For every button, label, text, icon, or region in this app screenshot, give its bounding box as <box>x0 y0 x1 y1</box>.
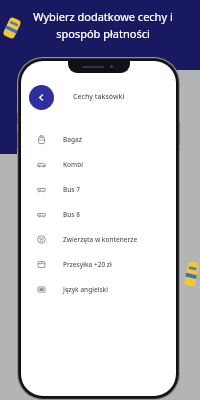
staticText: Bus 8 <box>63 210 80 219</box>
staticText: Zwierzęta w kontenerze <box>63 235 138 244</box>
staticText: Bus 7 <box>63 185 80 194</box>
button[interactable]: Przesyłka +20 zł <box>21 252 176 277</box>
staticText: spospób płatności <box>56 26 150 41</box>
button[interactable]: Bus 8 <box>21 202 176 227</box>
staticText: Bagaż <box>63 135 82 144</box>
button[interactable]: Back <box>29 85 54 110</box>
staticText: Język angielski <box>63 285 109 294</box>
button[interactable]: Bagaż <box>21 127 176 152</box>
button[interactable]: Język angielski <box>21 277 176 302</box>
staticText: Przesyłka +20 zł <box>63 260 112 269</box>
button[interactable]: Zwierzęta w kontenerze <box>21 227 176 252</box>
staticText: Wybierz dodatkowe cechy i <box>33 9 173 24</box>
staticText: Cechy taksówki <box>73 92 125 102</box>
staticText: Kombi <box>63 160 84 169</box>
button[interactable]: Bus 7 <box>21 177 176 202</box>
button[interactable]: Kombi <box>21 152 176 177</box>
